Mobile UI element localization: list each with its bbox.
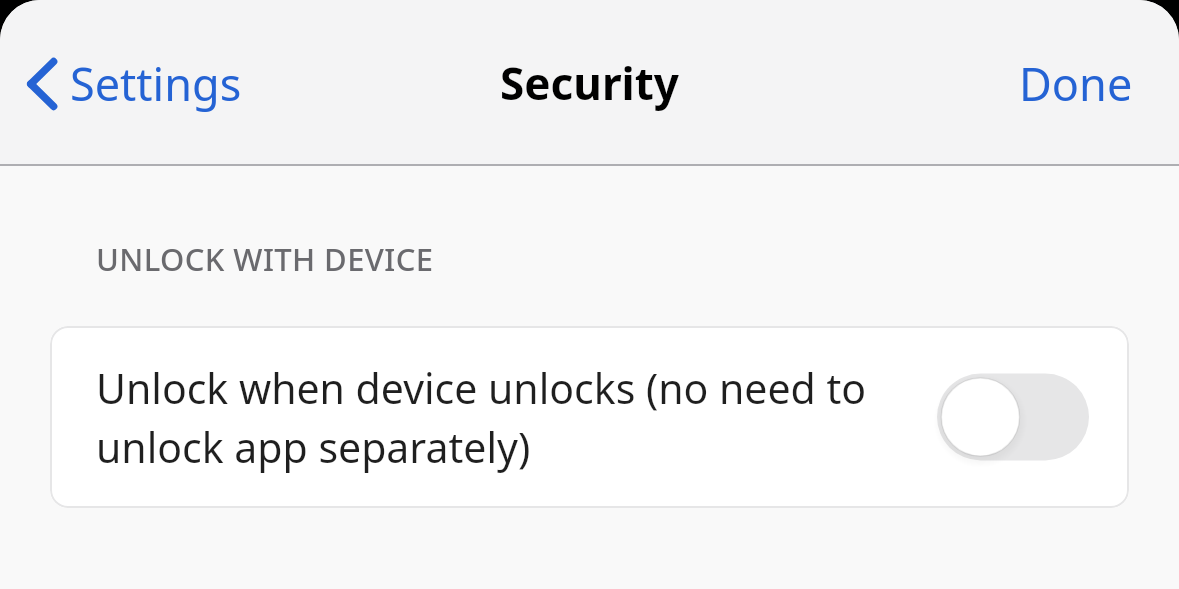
staticText: Settings: [70, 53, 242, 114]
staticText: Done: [1019, 53, 1133, 114]
button[interactable]: Unlock when device unlocks (no need to u…: [50, 326, 1129, 508]
button[interactable]: Unlock when device unlocks toggle: [937, 372, 1089, 462]
button[interactable]: Done: [1011, 45, 1141, 122]
staticText: Unlock when device unlocks (no need to u…: [96, 360, 907, 475]
staticText: Security: [500, 53, 679, 113]
staticText: UNLOCK WITH DEVICE: [96, 238, 434, 280]
button[interactable]: Settings: [18, 47, 250, 120]
